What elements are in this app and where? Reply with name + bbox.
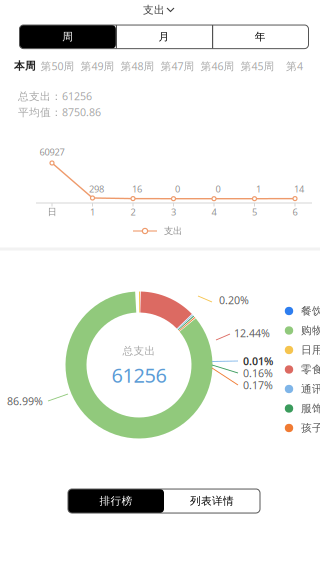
staticText: 3 bbox=[171, 206, 176, 218]
staticText: 第4 bbox=[286, 59, 303, 73]
staticText: 16 bbox=[132, 183, 142, 195]
staticText: 0 bbox=[175, 183, 180, 195]
staticText: 14 bbox=[294, 183, 304, 195]
button[interactable]: 列表详情 bbox=[164, 489, 260, 513]
staticText: 86.99% bbox=[7, 394, 43, 408]
button[interactable]: 月 bbox=[116, 25, 212, 49]
staticText: 孩子 bbox=[301, 421, 320, 434]
button[interactable]: 第50周 bbox=[38, 56, 76, 76]
staticText: 排行榜 bbox=[99, 494, 132, 507]
staticText: 1 bbox=[256, 183, 261, 195]
button[interactable]: 年 bbox=[212, 25, 308, 49]
staticText: 周 bbox=[62, 30, 73, 43]
button[interactable]: 餐饮 bbox=[0, 0, 320, 569]
button[interactable]: 第46周 bbox=[198, 56, 236, 76]
staticText: 平均值：8750.86 bbox=[18, 105, 101, 119]
staticText: 第50周 bbox=[40, 59, 74, 73]
staticText: 5 bbox=[252, 206, 257, 218]
staticText: 4 bbox=[211, 206, 216, 218]
staticText: 第49周 bbox=[80, 59, 114, 73]
staticText: 餐饮 bbox=[301, 304, 320, 317]
staticText: 列表详情 bbox=[190, 494, 234, 507]
button[interactable]: 日用 bbox=[0, 0, 320, 569]
button[interactable]: 第49周 bbox=[78, 56, 116, 76]
staticText: 0.16% bbox=[243, 366, 273, 380]
staticText: 1 bbox=[90, 206, 95, 218]
staticText: 支出 bbox=[164, 225, 182, 237]
staticText: 6 bbox=[292, 206, 297, 218]
staticText: 298 bbox=[89, 183, 104, 195]
button[interactable]: 第45周 bbox=[238, 56, 276, 76]
staticText: 总支出：61256 bbox=[18, 89, 92, 103]
button[interactable]: 周 bbox=[20, 25, 116, 49]
staticText: 2 bbox=[130, 206, 135, 218]
staticText: 本周 bbox=[14, 59, 36, 72]
button[interactable]: 零食 bbox=[0, 0, 320, 569]
staticText: 月 bbox=[158, 30, 169, 43]
staticText: 零食 bbox=[301, 363, 320, 376]
button[interactable]: 排行榜 bbox=[68, 489, 164, 513]
button[interactable]: 购物 bbox=[0, 0, 320, 569]
staticText: 0.01% bbox=[243, 354, 273, 368]
staticText: 总支出 bbox=[122, 344, 155, 357]
staticText: 购物 bbox=[301, 324, 320, 337]
button[interactable]: 孩子 bbox=[0, 0, 320, 569]
staticText: 0.20% bbox=[219, 293, 249, 307]
staticText: 服饰 bbox=[301, 402, 320, 415]
button[interactable]: 第48周 bbox=[118, 56, 156, 76]
staticText: 支出 bbox=[143, 3, 165, 16]
staticText: 第47周 bbox=[160, 59, 194, 73]
staticText: 通讯 bbox=[301, 382, 320, 395]
button[interactable]: 服饰 bbox=[0, 0, 320, 569]
button[interactable]: 第47周 bbox=[158, 56, 196, 76]
staticText: 年 bbox=[255, 30, 266, 43]
button[interactable]: 支出 bbox=[129, 1, 189, 19]
button[interactable]: 本周 bbox=[10, 56, 40, 76]
staticText: 日用 bbox=[301, 343, 320, 356]
staticText: 第48周 bbox=[120, 59, 154, 73]
staticText: 60927 bbox=[39, 146, 64, 158]
button[interactable]: 通讯 bbox=[0, 0, 320, 569]
staticText: 日 bbox=[47, 206, 56, 218]
staticText: 0 bbox=[215, 183, 220, 195]
staticText: 第45周 bbox=[240, 59, 274, 73]
staticText: 61256 bbox=[111, 362, 166, 388]
button[interactable]: 第4 bbox=[286, 56, 308, 76]
staticText: 12.44% bbox=[234, 326, 270, 340]
staticText: 第46周 bbox=[200, 59, 234, 73]
staticText: 0.17% bbox=[243, 378, 273, 392]
